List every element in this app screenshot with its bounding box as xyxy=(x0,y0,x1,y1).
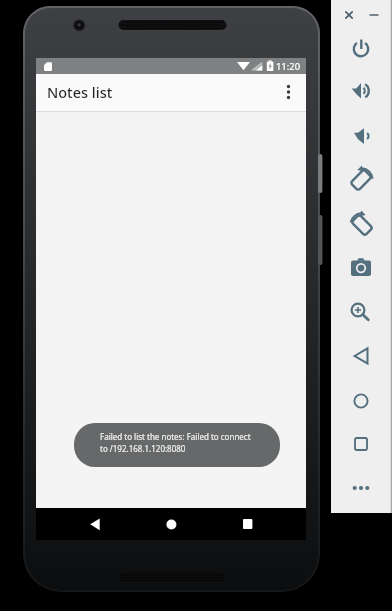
button[interactable] xyxy=(345,120,377,152)
button[interactable] xyxy=(333,0,365,31)
button[interactable] xyxy=(346,209,378,241)
button[interactable] xyxy=(345,472,377,504)
button[interactable] xyxy=(80,509,110,539)
button[interactable] xyxy=(358,0,390,31)
button[interactable] xyxy=(345,75,377,107)
button[interactable] xyxy=(344,296,376,328)
staticText: Failed to list the notes: Failed to conn… xyxy=(100,431,251,454)
button[interactable] xyxy=(345,340,377,372)
button[interactable] xyxy=(345,385,377,417)
button[interactable] xyxy=(156,509,186,539)
button[interactable] xyxy=(345,428,377,460)
button[interactable] xyxy=(345,164,377,196)
button[interactable] xyxy=(345,252,377,284)
button[interactable] xyxy=(345,33,377,65)
button[interactable] xyxy=(276,76,302,109)
staticText: 11:20 xyxy=(276,60,301,73)
staticText: Notes list xyxy=(47,82,113,102)
button[interactable] xyxy=(229,509,259,539)
